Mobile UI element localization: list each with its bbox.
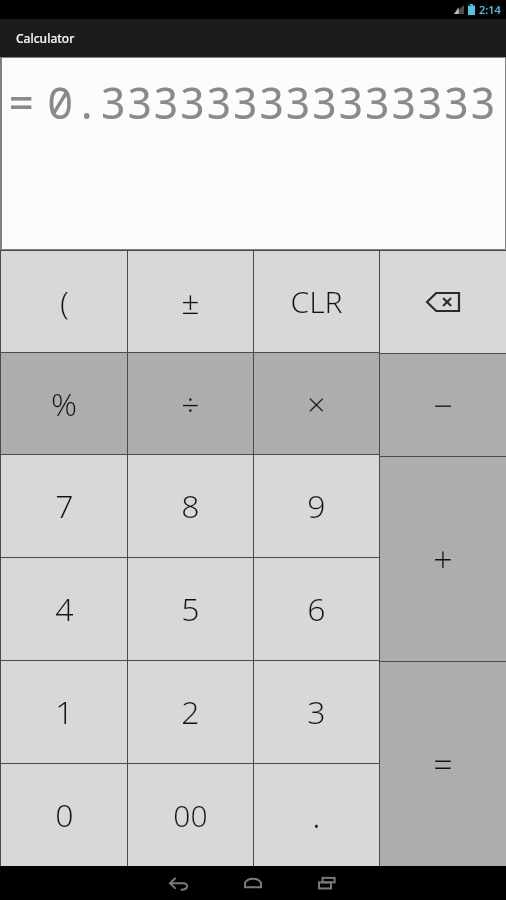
staticText: 1 <box>55 690 74 734</box>
button[interactable]: 3 <box>254 661 379 763</box>
button[interactable]: Recent apps <box>290 866 364 900</box>
staticText: × <box>307 382 326 426</box>
staticText: . <box>312 792 321 838</box>
staticText: 2 <box>181 690 200 734</box>
button[interactable]: = <box>380 662 506 866</box>
button[interactable]: 4 <box>1 558 127 660</box>
staticText: ± <box>181 280 200 324</box>
staticText: 3 <box>307 690 326 734</box>
button[interactable]: ± <box>128 251 253 352</box>
button[interactable]: × <box>254 353 379 454</box>
button[interactable]: 6 <box>254 558 379 660</box>
staticText: ÷ <box>181 382 200 426</box>
staticText: 4 <box>55 587 74 631</box>
staticText: Calculator <box>16 30 75 46</box>
staticText: + <box>433 536 453 582</box>
button[interactable]: . <box>254 764 379 866</box>
button[interactable]: Back <box>142 866 216 900</box>
staticText: 00 <box>173 795 208 836</box>
staticText: ( <box>60 280 69 324</box>
staticText: 0 <box>55 793 74 837</box>
staticText: 0.3333333333333333 <box>47 72 505 132</box>
button[interactable]: − <box>380 354 506 456</box>
staticText: 5 <box>181 587 200 631</box>
button[interactable]: 0 <box>1 764 127 866</box>
button[interactable]: 5 <box>128 558 253 660</box>
staticText: 9 <box>307 484 326 528</box>
staticText: 2:14 <box>479 2 501 17</box>
staticText: = <box>433 741 453 787</box>
staticText: CLR <box>290 281 343 322</box>
button[interactable]: 8 <box>128 455 253 557</box>
staticText: = <box>8 72 35 132</box>
button[interactable]: % <box>1 353 127 454</box>
button[interactable]: + <box>380 457 506 661</box>
staticText: − <box>433 382 453 428</box>
button[interactable]: ÷ <box>128 353 253 454</box>
button[interactable]: 1 <box>1 661 127 763</box>
staticText: % <box>51 382 77 426</box>
staticText: 7 <box>55 484 74 528</box>
button[interactable]: Backspace <box>380 251 506 353</box>
button[interactable]: 00 <box>128 764 253 866</box>
staticText: 6 <box>307 587 326 631</box>
button[interactable]: CLR <box>254 251 379 352</box>
button[interactable]: Home <box>216 866 290 900</box>
button[interactable]: 2 <box>128 661 253 763</box>
button[interactable]: ( <box>1 251 127 352</box>
staticText: 8 <box>181 484 200 528</box>
button[interactable]: 9 <box>254 455 379 557</box>
button[interactable]: 7 <box>1 455 127 557</box>
